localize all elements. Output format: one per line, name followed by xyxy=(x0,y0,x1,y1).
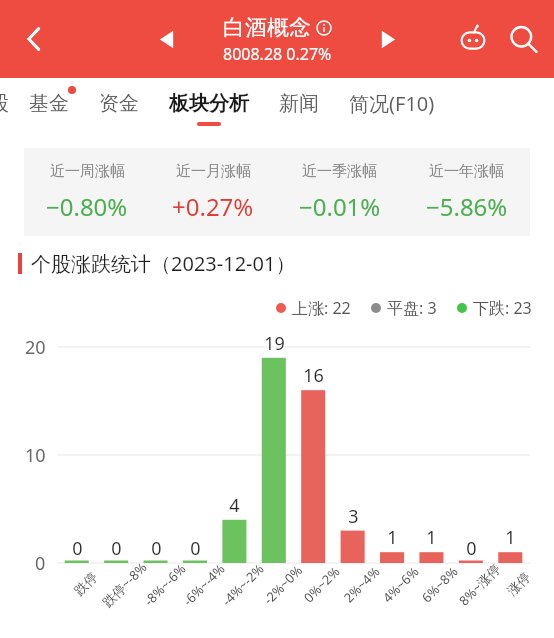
staticText: 近一周涨幅 xyxy=(50,162,125,181)
staticText: 19 xyxy=(264,331,285,355)
staticText: 16 xyxy=(303,363,324,387)
staticText: -6%~-4% xyxy=(179,559,229,610)
button[interactable]: 基金 xyxy=(29,78,69,144)
button[interactable]: 新闻 xyxy=(279,78,319,144)
button[interactable]: Back xyxy=(8,13,60,65)
staticText: 跌停 xyxy=(71,569,100,598)
staticText: 0 xyxy=(35,551,46,575)
staticText: 基金 xyxy=(29,91,69,116)
staticText: 0 xyxy=(190,536,201,560)
staticText: 0 xyxy=(151,536,162,560)
staticText: 板块分析 xyxy=(169,91,249,116)
button[interactable]: 下跌: 23 xyxy=(457,297,532,319)
staticText: 白酒概念 xyxy=(223,14,311,42)
staticText: 2%~4% xyxy=(340,563,383,606)
staticText: 20 xyxy=(25,335,46,359)
button[interactable]: 简况(F10) xyxy=(349,78,435,144)
staticText: 0 xyxy=(111,536,122,560)
staticText: 0%~2% xyxy=(300,563,343,606)
staticText: -2%~0% xyxy=(259,561,307,608)
staticText: 10 xyxy=(25,443,46,467)
button[interactable]: 平盘: 3 xyxy=(371,297,437,319)
staticText: 股 xyxy=(0,91,9,116)
staticText: 新闻 xyxy=(279,91,319,116)
staticText: 跌停~-8% xyxy=(98,558,151,611)
button[interactable]: 资金 xyxy=(99,78,139,144)
staticText: +0.27% xyxy=(172,190,254,223)
staticText: 上涨: 22 xyxy=(292,297,351,319)
staticText: -8%~-6% xyxy=(140,559,190,610)
staticText: 平盘: 3 xyxy=(387,297,437,319)
staticText: 6%~8% xyxy=(418,563,461,606)
staticText: 8008.28 0.27% xyxy=(223,43,332,65)
staticText: 4 xyxy=(229,493,240,517)
staticText: 个股涨跌统计（2023-12-01） xyxy=(31,250,296,277)
button[interactable]: Search xyxy=(498,14,548,64)
staticText: 0 xyxy=(466,536,477,560)
button[interactable]: Previous sector xyxy=(145,17,189,61)
staticText: −0.01% xyxy=(299,190,381,223)
staticText: 1 xyxy=(505,525,516,549)
staticText: 涨停 xyxy=(504,569,533,598)
staticText: 1 xyxy=(387,525,398,549)
staticText: 近一年涨幅 xyxy=(429,162,504,181)
button[interactable]: AI assistant xyxy=(448,14,498,64)
button[interactable]: 股 xyxy=(0,78,9,144)
staticText: 近一月涨幅 xyxy=(176,162,251,181)
button[interactable]: 板块分析 xyxy=(169,78,249,144)
staticText: 1 xyxy=(426,525,437,549)
staticText: 8%~涨停 xyxy=(455,560,504,609)
staticText: 近一季涨幅 xyxy=(302,162,377,181)
staticText: 0 xyxy=(72,536,83,560)
button[interactable]: 上涨: 22 xyxy=(276,297,351,319)
staticText: −5.86% xyxy=(426,190,508,223)
staticText: 简况(F10) xyxy=(349,90,435,117)
staticText: 4%~6% xyxy=(379,563,422,606)
staticText: 资金 xyxy=(99,91,139,116)
staticText: −0.80% xyxy=(46,190,128,223)
staticText: 下跌: 23 xyxy=(473,297,532,319)
staticText: 3 xyxy=(348,504,359,528)
staticText: -4%~-2% xyxy=(218,559,268,610)
button[interactable]: Next sector xyxy=(365,17,409,61)
